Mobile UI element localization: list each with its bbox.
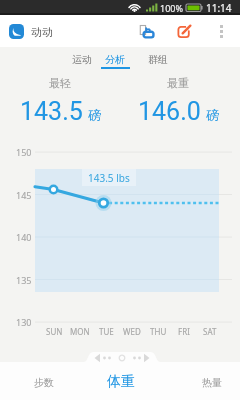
button[interactable]: Print xyxy=(134,15,160,47)
staticText: 150 xyxy=(16,146,32,158)
staticText: 最重 xyxy=(167,76,189,90)
staticText: 143.5 xyxy=(20,97,83,126)
staticText: 分析 xyxy=(105,53,125,66)
staticText: 群组 xyxy=(148,53,168,66)
staticText: 动动 xyxy=(31,25,53,39)
staticText: 热量 xyxy=(202,376,222,389)
staticText: 130 xyxy=(16,316,32,328)
button[interactable]: 步数 xyxy=(10,366,78,398)
staticText: MON xyxy=(70,326,90,337)
button[interactable]: 热量 xyxy=(178,366,240,398)
staticText: 步数 xyxy=(34,376,54,389)
staticText: FRI xyxy=(178,326,190,337)
staticText: 11:14 xyxy=(206,1,232,15)
staticText: 体重 xyxy=(107,373,135,391)
staticText: SUN xyxy=(46,326,63,337)
staticText: 145 xyxy=(16,189,32,201)
staticText: 100% xyxy=(160,2,183,14)
staticText: 磅 xyxy=(206,107,219,123)
staticText: 143.5 lbs xyxy=(88,171,130,185)
staticText: TUE xyxy=(99,326,114,337)
button[interactable]: 运动 xyxy=(64,47,100,69)
button[interactable]: More options xyxy=(210,15,232,47)
staticText: SAT xyxy=(203,326,217,337)
staticText: 运动 xyxy=(72,53,92,66)
button[interactable]: 分析 xyxy=(97,47,133,69)
staticText: THU xyxy=(150,326,167,337)
staticText: 140 xyxy=(16,231,32,243)
button[interactable]: 群组 xyxy=(140,47,176,69)
staticText: 135 xyxy=(16,274,32,286)
button[interactable]: 体重 xyxy=(87,366,155,398)
staticText: WED xyxy=(123,326,141,337)
button[interactable]: Edit xyxy=(171,15,197,47)
staticText: 最轻 xyxy=(49,76,71,90)
staticText: 146.0 xyxy=(138,97,201,126)
staticText: 磅 xyxy=(88,107,101,123)
